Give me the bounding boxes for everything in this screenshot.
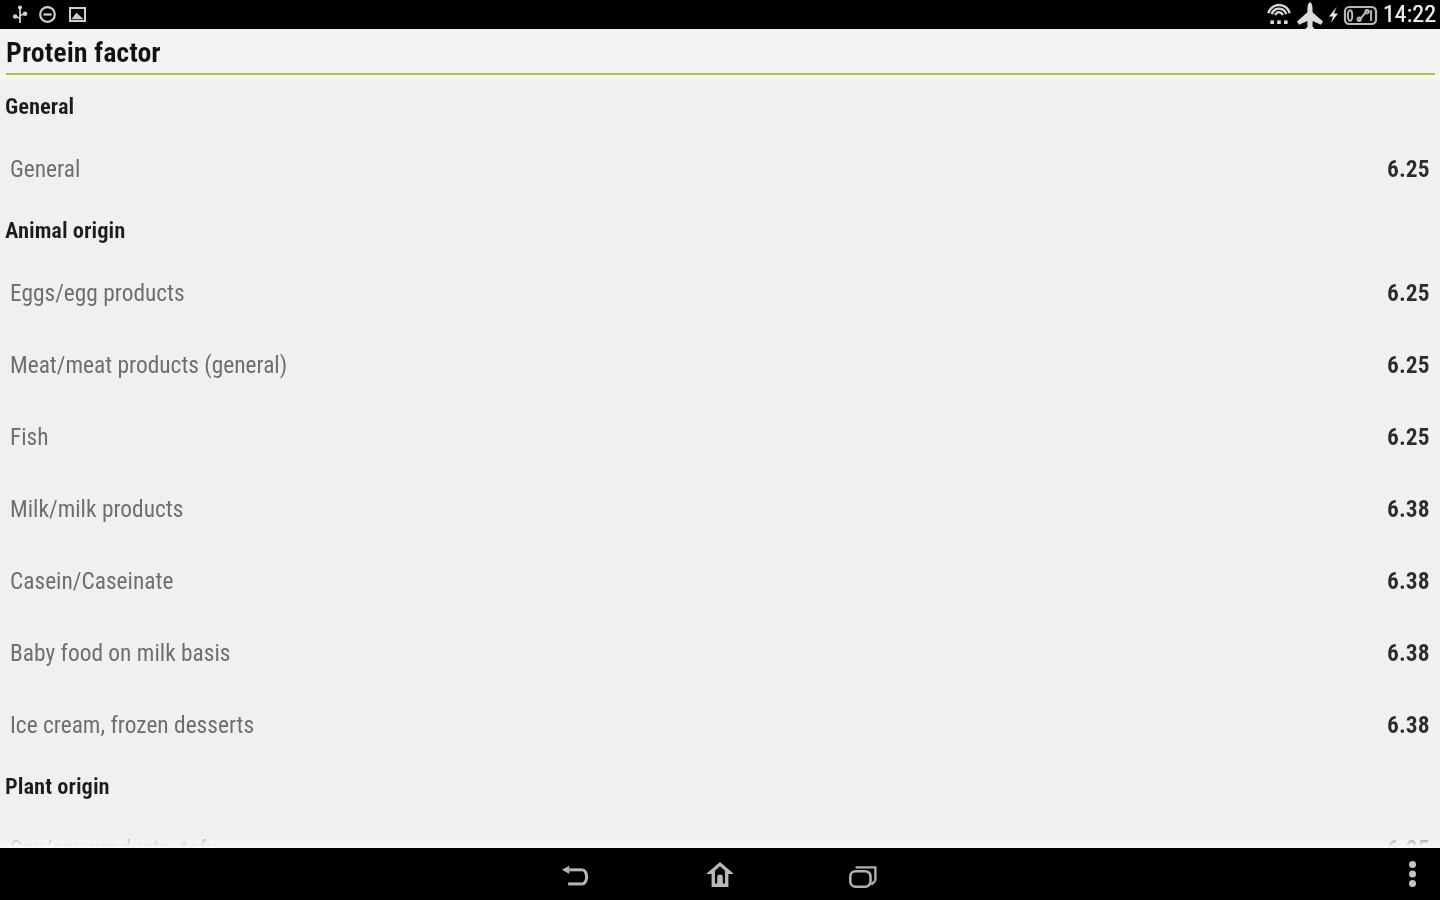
button[interactable]: Meat/meat products (general) bbox=[0, 328, 1440, 400]
staticText: 14:22 bbox=[1383, 0, 1436, 28]
staticText: Casein/Caseinate bbox=[10, 567, 174, 594]
button[interactable]: Baby food on milk basis bbox=[0, 616, 1440, 688]
staticText: Soy/soy products, tofu bbox=[10, 835, 219, 862]
staticText: 6.38 bbox=[1387, 567, 1430, 595]
button[interactable]: Back bbox=[504, 848, 648, 900]
button[interactable]: Recent apps bbox=[792, 848, 936, 900]
staticText: 6.25 bbox=[1387, 279, 1430, 307]
staticText: Baby food on milk basis bbox=[10, 639, 231, 666]
button[interactable]: Casein/Caseinate bbox=[0, 544, 1440, 616]
staticText: 6.38 bbox=[1387, 495, 1430, 523]
staticText: Milk/milk products bbox=[10, 495, 184, 522]
staticText: Plant origin bbox=[5, 773, 110, 799]
button[interactable]: Ice cream, frozen desserts bbox=[0, 688, 1440, 760]
staticText: Eggs/egg products bbox=[10, 279, 185, 306]
staticText: 6.38 bbox=[1387, 711, 1430, 739]
button[interactable]: General bbox=[0, 132, 1440, 204]
button[interactable]: More options bbox=[1384, 848, 1440, 900]
button[interactable]: Eggs/egg products bbox=[0, 256, 1440, 328]
button[interactable]: Fish bbox=[0, 400, 1440, 472]
staticText: 6.25 bbox=[1387, 155, 1430, 183]
button[interactable]: Home bbox=[648, 848, 792, 900]
staticText: 6.25 bbox=[1387, 423, 1430, 451]
staticText: Fish bbox=[10, 423, 49, 450]
staticText: 6.38 bbox=[1387, 639, 1430, 667]
button[interactable]: Soy/soy products, tofu bbox=[0, 812, 1440, 884]
staticText: Protein factor bbox=[6, 36, 161, 69]
staticText: 6.25 bbox=[1387, 351, 1430, 379]
button[interactable]: Milk/milk products bbox=[0, 472, 1440, 544]
staticText: General bbox=[5, 93, 75, 119]
staticText: Meat/meat products (general) bbox=[10, 351, 288, 378]
staticText: Animal origin bbox=[5, 217, 126, 243]
staticText: 6.25 bbox=[1387, 835, 1430, 863]
staticText: Ice cream, frozen desserts bbox=[10, 711, 255, 738]
staticText: General bbox=[10, 155, 81, 182]
